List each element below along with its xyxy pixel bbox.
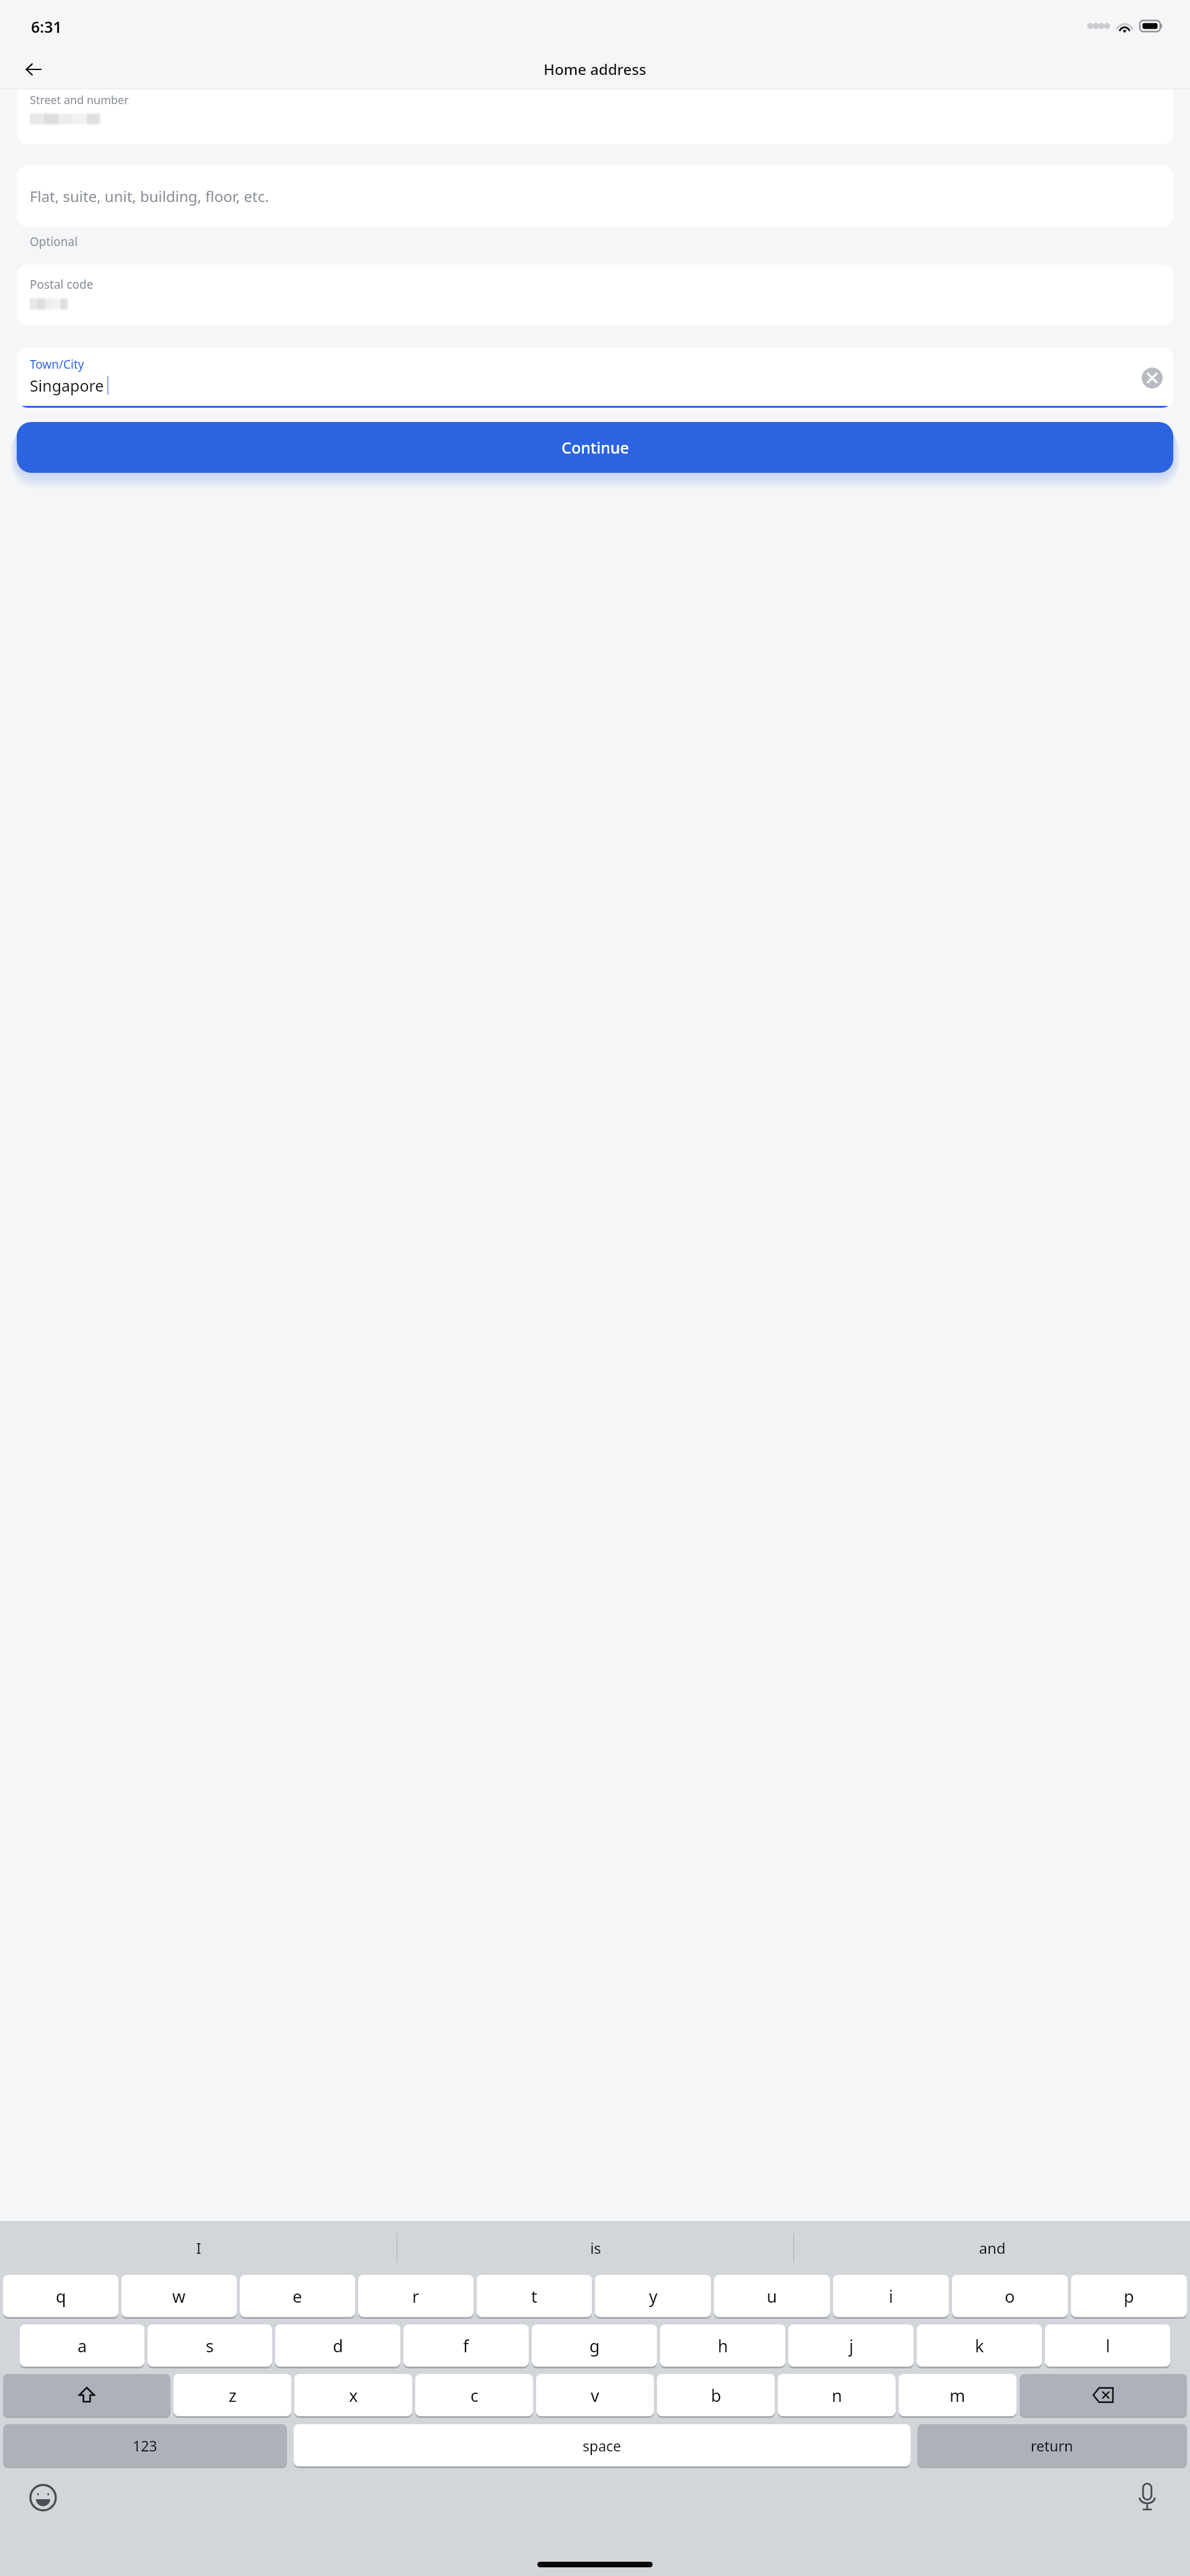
button[interactable]: l xyxy=(1045,2324,1170,2367)
button[interactable]: Postal code xyxy=(17,265,1173,326)
button[interactable]: b xyxy=(657,2374,775,2416)
staticText: j xyxy=(849,2334,853,2357)
button[interactable]: Continue xyxy=(17,422,1173,473)
staticText: is xyxy=(590,2238,601,2258)
staticText: e xyxy=(293,2285,302,2308)
staticText: g xyxy=(589,2334,600,2357)
staticText: y xyxy=(649,2285,658,2308)
button[interactable]: i xyxy=(833,2275,949,2317)
staticText: o xyxy=(1005,2285,1015,2308)
staticText: s xyxy=(206,2334,214,2357)
staticText: Town/City xyxy=(30,356,84,372)
button[interactable]: r xyxy=(358,2275,474,2317)
staticText: 123 xyxy=(133,2436,157,2455)
button[interactable]: g xyxy=(532,2324,657,2367)
staticText: space xyxy=(583,2436,622,2455)
staticText: u xyxy=(767,2285,777,2308)
staticText: i xyxy=(889,2285,893,2308)
staticText: l xyxy=(1106,2334,1110,2357)
staticText: b xyxy=(711,2384,721,2407)
staticText: v xyxy=(591,2384,599,2407)
staticText: t xyxy=(531,2285,537,2308)
button[interactable]: I xyxy=(0,2221,397,2275)
button[interactable]: w xyxy=(121,2275,237,2317)
staticText: Home address xyxy=(544,59,646,79)
staticText: Flat, suite, unit, building, floor, etc. xyxy=(30,186,269,206)
staticText: Street and number xyxy=(30,92,129,108)
staticText: Postal code xyxy=(30,276,94,292)
staticText: d xyxy=(333,2334,343,2357)
button[interactable]: n xyxy=(778,2374,896,2416)
button[interactable]: Flat, suite, unit, building, floor, etc. xyxy=(17,165,1173,227)
staticText: k xyxy=(975,2334,984,2357)
button[interactable]: m xyxy=(899,2374,1016,2416)
button[interactable]: return xyxy=(917,2424,1187,2466)
button[interactable]: y xyxy=(595,2275,711,2317)
staticText: p xyxy=(1124,2285,1134,2308)
button[interactable]: d xyxy=(275,2324,400,2367)
button[interactable]: Street and number xyxy=(17,89,1173,144)
button[interactable]: is xyxy=(397,2221,793,2275)
staticText: Continue xyxy=(562,437,629,458)
staticText: m xyxy=(950,2384,966,2407)
button[interactable]: p xyxy=(1071,2275,1187,2317)
button[interactable]: z xyxy=(174,2374,291,2416)
button[interactable]: e xyxy=(240,2275,355,2317)
staticText: c xyxy=(470,2384,478,2407)
button[interactable]: Town/City xyxy=(17,348,1173,408)
button[interactable]: x xyxy=(294,2374,412,2416)
staticText: Optional xyxy=(30,234,78,250)
staticText: h xyxy=(718,2334,728,2357)
staticText: r xyxy=(412,2285,420,2308)
staticText: return xyxy=(1031,2436,1073,2455)
button[interactable]: q xyxy=(3,2275,118,2317)
button[interactable]: j xyxy=(788,2324,914,2367)
button[interactable]: 123 xyxy=(3,2424,287,2466)
button[interactable]: u xyxy=(714,2275,830,2317)
staticText: w xyxy=(172,2285,186,2308)
button[interactable]: f xyxy=(403,2324,529,2367)
staticText: z xyxy=(229,2384,237,2407)
button[interactable]: Emoji xyxy=(25,2479,61,2515)
button[interactable]: Back xyxy=(14,50,53,89)
button[interactable]: o xyxy=(952,2275,1068,2317)
staticText: a xyxy=(77,2334,87,2357)
button[interactable]: s xyxy=(148,2324,272,2367)
staticText: n xyxy=(832,2384,842,2407)
button[interactable]: Clear text xyxy=(1142,367,1163,389)
button[interactable]: a xyxy=(20,2324,144,2367)
button[interactable]: v xyxy=(536,2374,654,2416)
button[interactable]: Shift xyxy=(3,2374,170,2416)
button[interactable]: and xyxy=(794,2221,1190,2275)
button[interactable]: k xyxy=(917,2324,1042,2367)
button[interactable]: Backspace xyxy=(1020,2374,1187,2416)
button[interactable]: c xyxy=(415,2374,533,2416)
staticText: Singapore xyxy=(30,375,104,396)
button[interactable]: h xyxy=(660,2324,785,2367)
button[interactable]: t xyxy=(477,2275,592,2317)
staticText: x xyxy=(349,2384,358,2407)
button[interactable]: space xyxy=(294,2424,910,2466)
staticText: 6:31 xyxy=(31,16,62,37)
staticText: and xyxy=(979,2238,1006,2258)
staticText: f xyxy=(463,2334,469,2357)
staticText: I xyxy=(196,2238,201,2258)
button[interactable]: Voice input xyxy=(1129,2479,1165,2515)
staticText: q xyxy=(56,2285,66,2308)
